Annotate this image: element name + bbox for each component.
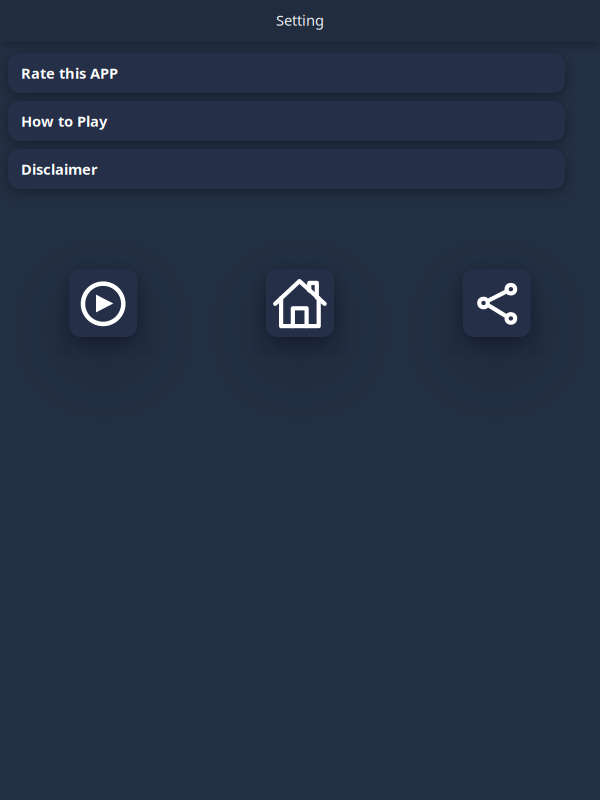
button[interactable]: How to Play — [8, 101, 565, 141]
staticText: Disclaimer — [21, 159, 98, 179]
staticText: Rate this APP — [21, 63, 118, 83]
button[interactable]: Home — [266, 269, 334, 337]
staticText: How to Play — [21, 111, 107, 131]
button[interactable]: Rate this APP — [8, 53, 565, 93]
button[interactable]: Share — [463, 269, 531, 337]
button[interactable]: Play — [69, 269, 137, 337]
button[interactable]: Disclaimer — [8, 149, 565, 189]
staticText: Setting — [276, 10, 324, 30]
